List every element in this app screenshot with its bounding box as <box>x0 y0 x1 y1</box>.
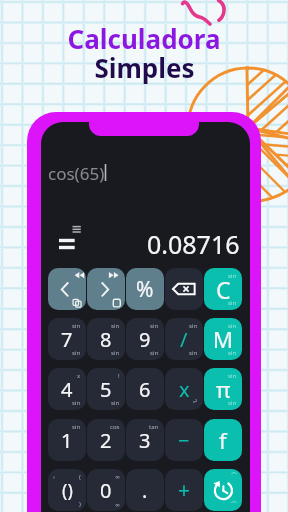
staticText: x <box>179 376 190 403</box>
staticText: 0 <box>100 477 112 504</box>
button[interactable]: History <box>204 469 242 511</box>
button[interactable]: Next <box>87 268 125 310</box>
staticText: Calculadora <box>67 21 221 56</box>
staticText: ) <box>79 500 81 508</box>
staticText: 7 <box>61 326 73 353</box>
staticText: 4 <box>61 376 73 403</box>
button[interactable]: 5 <box>87 368 125 410</box>
button[interactable]: 1 <box>48 419 86 461</box>
staticText: cos <box>110 423 120 431</box>
button[interactable]: 4 <box>48 368 86 410</box>
button[interactable]: π <box>204 368 242 410</box>
other: History <box>204 469 242 511</box>
button[interactable]: − <box>165 419 203 461</box>
staticText: () <box>62 478 73 503</box>
staticText: sin <box>72 322 81 330</box>
staticText: sin <box>72 423 81 431</box>
staticText: ‹ <box>53 473 55 481</box>
button[interactable]: 3 <box>126 419 164 461</box>
staticText: f <box>219 425 227 455</box>
staticText: x <box>77 372 81 380</box>
staticText: sin <box>111 322 120 330</box>
staticText: . <box>142 477 148 504</box>
staticText: M <box>213 324 233 354</box>
staticText: 3 <box>139 427 151 454</box>
staticText: sin <box>72 349 81 357</box>
button[interactable]: / <box>165 318 203 360</box>
button[interactable]: 0 <box>87 469 125 511</box>
staticText: sin <box>111 399 120 407</box>
staticText: ( <box>79 473 81 481</box>
button[interactable]: . <box>126 469 164 511</box>
staticText: 9 <box>139 326 151 353</box>
staticText: sin <box>228 399 237 407</box>
staticText: 8 <box>100 326 112 353</box>
staticText: sin <box>228 272 237 280</box>
staticText: sin <box>189 349 198 357</box>
staticText: ˣ² <box>193 399 198 407</box>
button[interactable]: 8 <box>87 318 125 360</box>
button[interactable]: 7 <box>48 318 86 360</box>
button[interactable]: x <box>165 368 203 410</box>
staticText: π <box>216 374 231 404</box>
button[interactable]: f <box>204 419 242 461</box>
staticText: sin <box>72 399 81 407</box>
button[interactable]: Previous <box>48 268 86 310</box>
staticText: sin <box>228 372 237 380</box>
staticText: sin <box>189 322 198 330</box>
button[interactable]: M <box>204 318 242 360</box>
staticText: sin <box>228 349 237 357</box>
staticText: tan <box>149 423 159 431</box>
staticText: ! <box>118 372 120 380</box>
staticText: + <box>178 476 191 505</box>
other: Previous <box>48 268 86 310</box>
staticText: C <box>216 274 231 305</box>
other: Delete <box>165 268 203 310</box>
staticText: % <box>136 275 154 304</box>
staticText: 1 <box>61 427 73 454</box>
button[interactable]: 2 <box>87 419 125 461</box>
button[interactable]: 9 <box>126 318 164 360</box>
button[interactable]: C <box>204 268 242 310</box>
staticText: 2 <box>100 427 112 454</box>
staticText: − <box>178 427 190 454</box>
button[interactable]: % <box>126 268 164 310</box>
staticText: ∞ <box>115 473 120 480</box>
staticText: sin <box>228 322 237 330</box>
staticText: / <box>180 326 188 353</box>
staticText: sin <box>150 322 159 330</box>
staticText: ⏜ <box>231 473 237 479</box>
staticText: 6 <box>139 376 151 403</box>
staticText: Simples <box>94 50 195 85</box>
button[interactable]: 6 <box>126 368 164 410</box>
button[interactable]: () <box>48 469 86 511</box>
staticText: 0.08716 <box>147 227 240 261</box>
staticText: sin <box>228 299 237 307</box>
button[interactable]: Delete <box>165 268 203 310</box>
staticText: ⏜ <box>231 502 237 508</box>
button[interactable]: + <box>165 469 203 511</box>
other: Next <box>87 268 125 310</box>
staticText: cos(65) <box>48 162 105 185</box>
staticText: sin <box>150 349 159 357</box>
staticText: sin <box>111 349 120 357</box>
staticText: 5 <box>100 376 112 403</box>
staticText: ∞ <box>115 501 120 508</box>
